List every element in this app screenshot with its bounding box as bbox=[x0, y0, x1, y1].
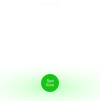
staticText: Start bbox=[46, 79, 53, 83]
button[interactable]: Start bbox=[41, 74, 59, 92]
staticText: Now bbox=[46, 83, 54, 87]
